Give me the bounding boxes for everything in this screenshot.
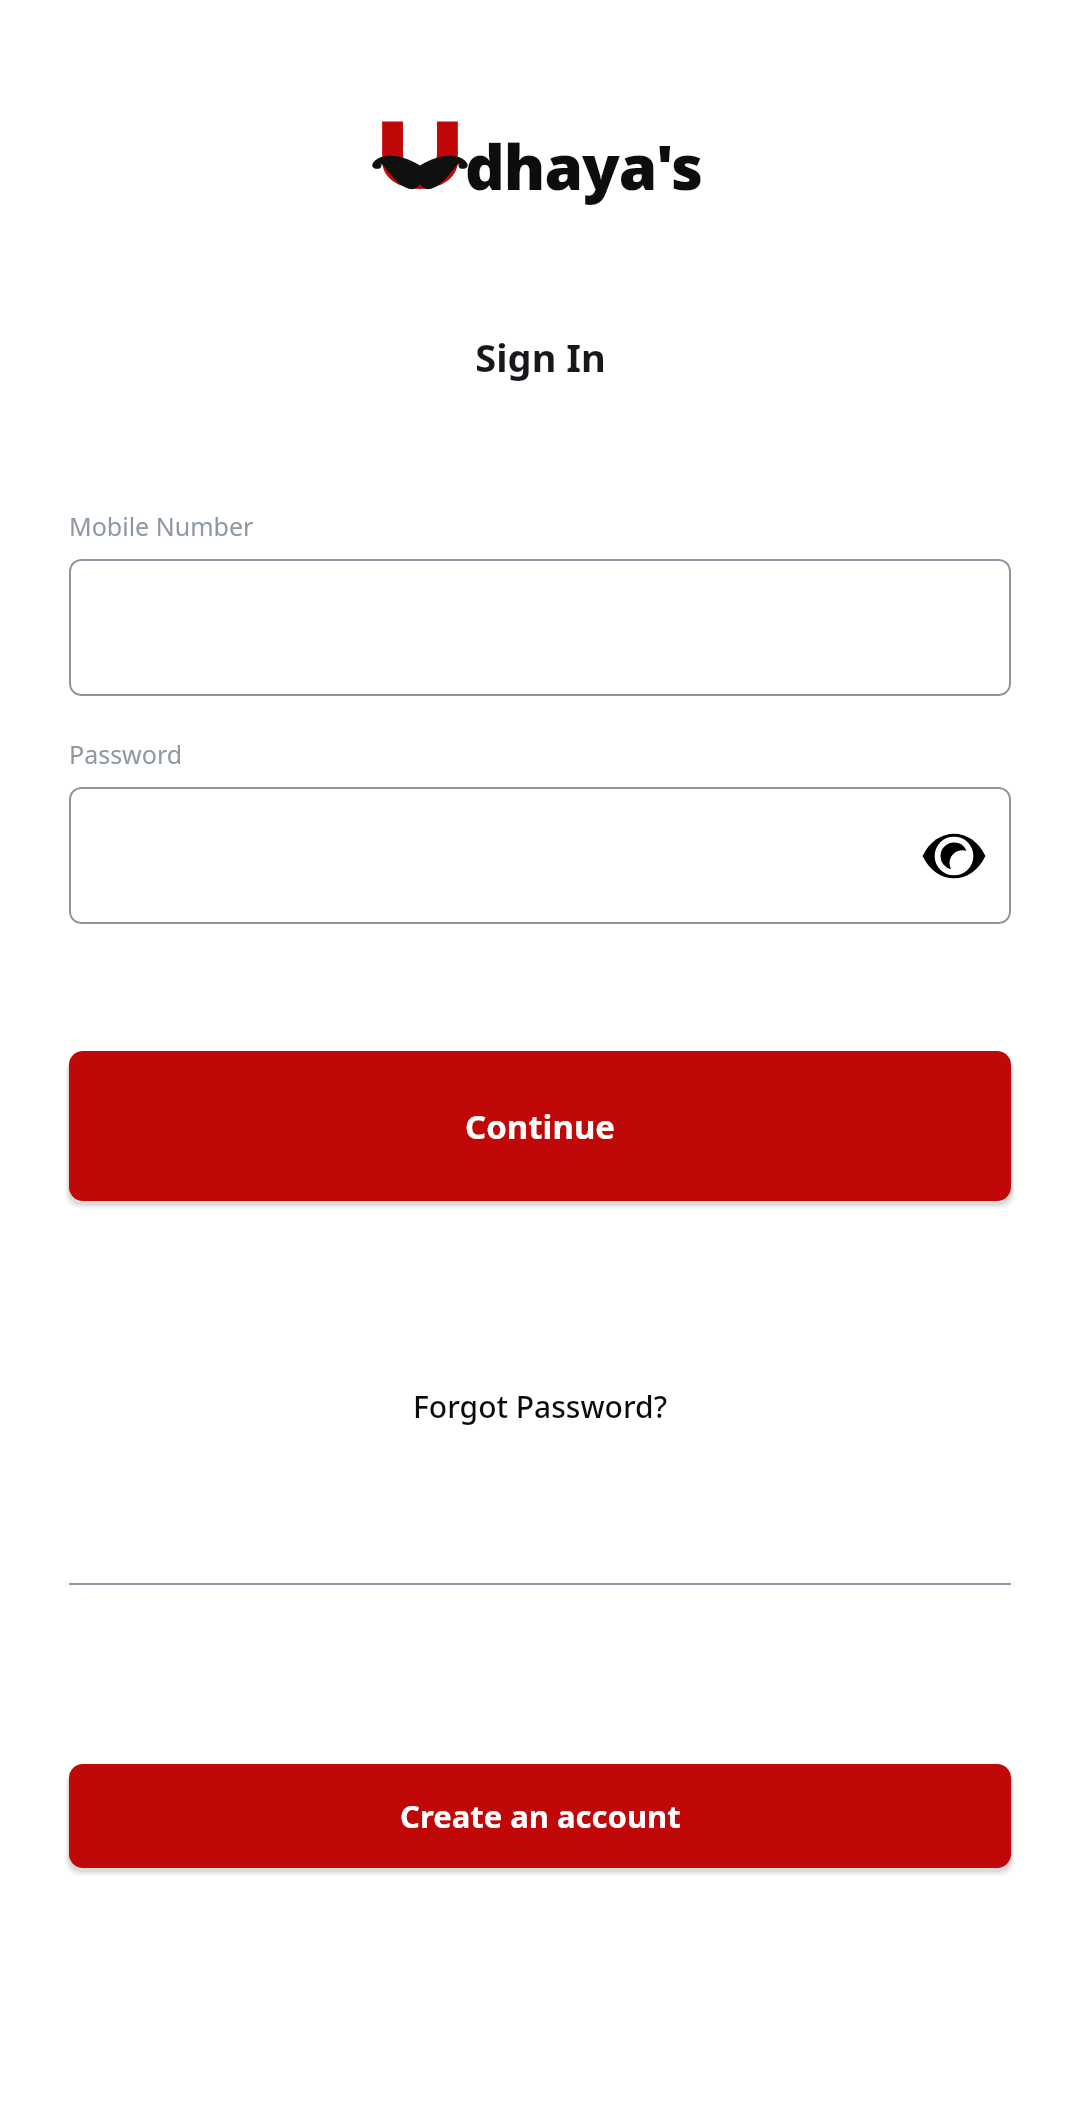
button[interactable]: Forgot Password? xyxy=(401,1378,680,1435)
button[interactable]: Show password xyxy=(69,787,1011,924)
staticText: Mobile Number xyxy=(69,509,254,543)
button[interactable]: Show password xyxy=(921,832,987,880)
button[interactable]: Continue xyxy=(69,1051,1011,1201)
staticText: Password xyxy=(69,737,183,771)
button[interactable] xyxy=(69,559,1011,696)
staticText: Create an account xyxy=(400,1795,681,1837)
staticText: Sign In xyxy=(475,331,606,383)
staticText: Forgot Password? xyxy=(413,1386,668,1427)
staticText: Continue xyxy=(465,1104,616,1149)
staticText: dhaya's xyxy=(465,124,703,208)
button[interactable]: Create an account xyxy=(69,1764,1011,1868)
